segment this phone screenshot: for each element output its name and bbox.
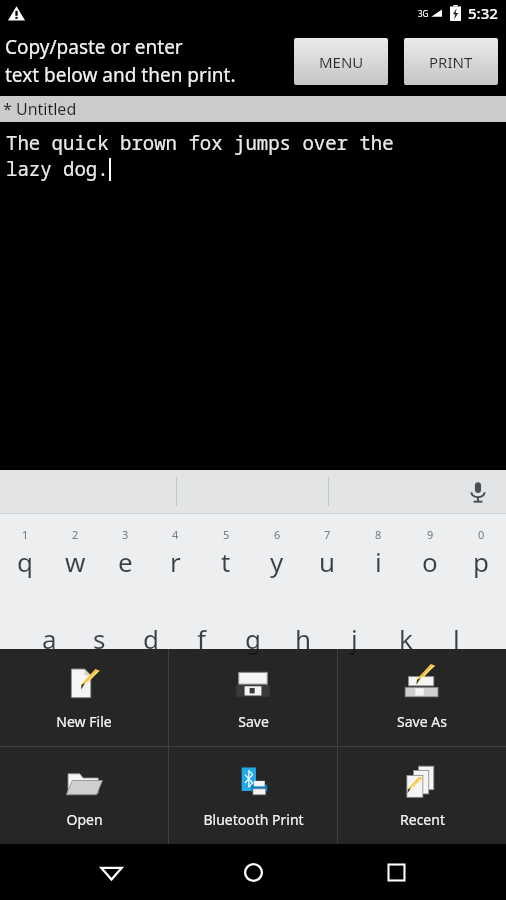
staticText: r — [170, 544, 181, 579]
staticText: l — [453, 621, 460, 656]
staticText: Save As — [397, 712, 447, 731]
button[interactable]: Back — [79, 844, 143, 900]
button[interactable]: 0 — [455, 514, 506, 592]
staticText: g — [245, 621, 261, 656]
staticText: New File — [56, 712, 112, 731]
staticText: w — [65, 544, 86, 579]
button[interactable]: l — [431, 592, 482, 670]
staticText: PRINT — [429, 52, 473, 72]
staticText: * Untitled — [3, 98, 77, 120]
button[interactable]: Voice input — [463, 477, 493, 507]
staticText: 0 — [478, 527, 485, 542]
staticText: Open — [66, 810, 103, 829]
staticText: t — [221, 544, 231, 579]
button[interactable]: Home — [221, 844, 285, 900]
staticText: Bluetooth Print — [203, 810, 304, 829]
staticText: y — [270, 544, 284, 579]
button[interactable]: h — [278, 592, 329, 670]
staticText: The quick brown fox jumps over the — [6, 130, 394, 156]
staticText: e — [118, 544, 133, 579]
button[interactable]: d — [125, 592, 176, 670]
staticText: 1 — [22, 527, 29, 542]
staticText: 3G — [418, 8, 429, 19]
staticText: lazy dog. — [6, 156, 109, 182]
staticText: i — [375, 544, 382, 579]
staticText: text below and then print. — [5, 62, 236, 88]
button[interactable]: 9 — [404, 514, 455, 592]
button[interactable]: Save As — [338, 649, 506, 746]
staticText: 5 — [223, 527, 230, 542]
staticText: Copy/paste or enter — [5, 34, 183, 60]
button[interactable]: 1 — [0, 514, 50, 592]
staticText: f — [197, 621, 206, 656]
button[interactable]: 4 — [150, 514, 200, 592]
button[interactable]: 7 — [302, 514, 353, 592]
staticText: p — [473, 544, 489, 579]
staticText: MENU — [319, 52, 364, 72]
staticText: 3 — [122, 527, 129, 542]
staticText: 2 — [72, 527, 79, 542]
button[interactable]: 6 — [251, 514, 302, 592]
button[interactable]: 8 — [353, 514, 404, 592]
button[interactable]: s — [74, 592, 125, 670]
button[interactable]: PRINT — [404, 38, 498, 85]
button[interactable]: Bluetooth Print — [169, 747, 337, 844]
button[interactable]: New File — [0, 649, 168, 746]
button[interactable]: The quick brown fox jumps over the — [0, 122, 506, 470]
button[interactable]: Open — [0, 747, 168, 844]
staticText: 7 — [324, 527, 331, 542]
staticText: q — [17, 544, 33, 579]
button[interactable]: Save — [169, 649, 337, 746]
button[interactable]: 3 — [100, 514, 150, 592]
staticText: 9 — [427, 527, 434, 542]
button[interactable]: Recents — [364, 844, 428, 900]
staticText: d — [143, 621, 159, 656]
button[interactable]: a — [24, 592, 74, 670]
staticText: a — [42, 621, 57, 656]
button[interactable]: k — [380, 592, 431, 670]
button[interactable]: 5 — [200, 514, 251, 592]
staticText: j — [351, 621, 358, 656]
button[interactable]: g — [227, 592, 278, 670]
staticText: Recent — [400, 810, 445, 829]
button[interactable]: j — [329, 592, 380, 670]
staticText: Save — [238, 712, 269, 731]
button[interactable]: Recent — [338, 747, 506, 844]
staticText: k — [399, 621, 413, 656]
staticText: h — [295, 621, 312, 656]
button[interactable]: 2 — [50, 514, 100, 592]
staticText: o — [422, 544, 438, 579]
staticText: 8 — [375, 527, 382, 542]
button[interactable]: MENU — [294, 38, 388, 85]
staticText: 5:32 — [468, 3, 498, 23]
staticText: 4 — [172, 527, 179, 542]
staticText: s — [93, 621, 106, 656]
staticText: 6 — [274, 527, 281, 542]
staticText: u — [319, 544, 336, 579]
button[interactable]: f — [176, 592, 227, 670]
